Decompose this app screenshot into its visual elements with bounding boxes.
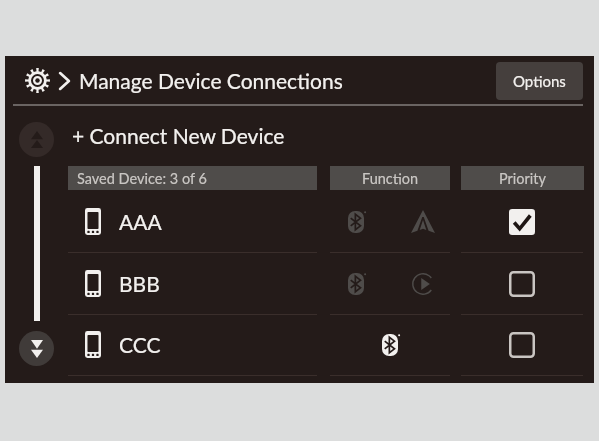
staticText: BBB	[119, 271, 160, 296]
button[interactable]: Saved Device: 3 of 6	[68, 166, 317, 190]
staticText: Manage Device Connections	[79, 68, 343, 93]
button[interactable]: CCC	[68, 314, 317, 375]
button[interactable]: AAA	[68, 191, 317, 252]
staticText: Priority	[499, 170, 546, 187]
button[interactable]: Function	[330, 166, 450, 190]
staticText: CCC	[119, 332, 161, 357]
button[interactable]: Scroll down	[19, 331, 54, 366]
staticText: Function	[362, 170, 418, 187]
button[interactable]: BBB	[68, 253, 317, 314]
button[interactable]	[461, 314, 583, 375]
staticText: Saved Device: 3 of 6	[77, 170, 207, 187]
button[interactable]: Priority	[461, 166, 584, 190]
button[interactable]: Scroll up	[19, 122, 54, 157]
button[interactable]	[330, 253, 450, 314]
staticText: + Connect New Device	[72, 123, 285, 148]
button[interactable]	[330, 191, 450, 252]
button[interactable]: + Connect New Device	[72, 112, 552, 158]
button[interactable]	[461, 253, 583, 314]
staticText: AAA	[119, 209, 162, 234]
button[interactable]	[461, 191, 583, 252]
button[interactable]: Manage Device Connections	[25, 68, 343, 93]
button[interactable]	[330, 314, 450, 375]
staticText: Options	[513, 72, 566, 90]
button[interactable]: Options	[496, 62, 583, 100]
